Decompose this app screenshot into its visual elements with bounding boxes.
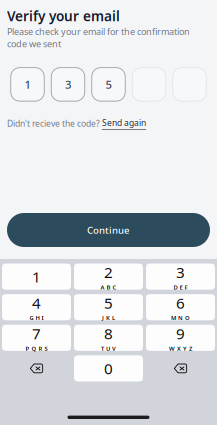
staticText: W X Y Z (169, 344, 192, 352)
staticText: Please check your email for the confirma… (7, 26, 190, 50)
staticText: T U V (101, 344, 116, 352)
staticText: 5 (104, 293, 113, 313)
staticText: Send again (102, 117, 146, 128)
button[interactable]: 9 (146, 325, 215, 351)
staticText: 4 (32, 293, 41, 313)
staticText: D E F (173, 283, 187, 291)
staticText: 6 (176, 293, 185, 313)
staticText: M N O (171, 314, 190, 322)
staticText: Didn't recieve the code? (7, 118, 102, 129)
staticText: G H I (29, 314, 43, 322)
staticText: 3 (176, 262, 185, 282)
button[interactable]: Delete (146, 355, 215, 381)
staticText: J K L (102, 314, 115, 322)
staticText: 0 (104, 358, 113, 378)
button[interactable]: 5 (74, 294, 143, 320)
staticText: 1 (24, 77, 30, 92)
button[interactable] (173, 68, 206, 101)
staticText: 9 (176, 323, 185, 343)
button[interactable]: 4 (2, 294, 71, 320)
button[interactable]: 7 (2, 325, 71, 351)
button[interactable]: 1 (11, 68, 44, 101)
staticText: A B C (100, 283, 116, 291)
staticText: 8 (104, 323, 113, 343)
staticText: Verify your email (7, 7, 120, 25)
staticText: 1 (32, 266, 41, 287)
button[interactable]: 0 (74, 355, 143, 381)
staticText: 3 (65, 77, 71, 92)
button[interactable]: Send again (102, 117, 146, 130)
button[interactable]: 6 (146, 294, 215, 320)
button[interactable]: 2 (74, 263, 143, 290)
button[interactable]: 5 (92, 68, 125, 101)
staticText: P Q R S (25, 344, 47, 352)
staticText: 5 (105, 77, 111, 92)
staticText: 2 (104, 262, 113, 282)
button[interactable]: 3 (51, 68, 85, 101)
staticText: Continue (87, 224, 130, 236)
button[interactable] (132, 68, 166, 101)
button[interactable]: 1 (2, 263, 71, 290)
staticText: 7 (32, 323, 41, 343)
button[interactable]: Delete (2, 355, 71, 381)
button[interactable]: Continue (7, 213, 210, 247)
button[interactable]: 3 (146, 263, 215, 290)
button[interactable]: 8 (74, 325, 143, 351)
